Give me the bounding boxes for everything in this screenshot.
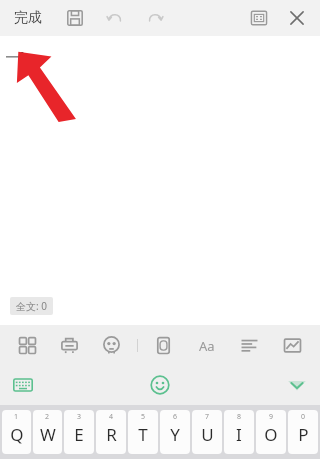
button[interactable]: Redo xyxy=(140,3,170,33)
staticText: 1 xyxy=(14,412,19,422)
button[interactable]: 完成 xyxy=(10,5,46,31)
button[interactable]: Hide keyboard xyxy=(280,368,314,402)
staticText: O xyxy=(264,423,278,446)
staticText: W xyxy=(40,423,56,446)
button[interactable]: Calendar xyxy=(244,3,274,33)
button[interactable]: Undo xyxy=(100,3,130,33)
staticText: Q xyxy=(10,423,24,446)
button[interactable]: Keyboard xyxy=(6,368,40,402)
button[interactable]: 2 xyxy=(33,410,62,454)
staticText: 9 xyxy=(269,412,274,422)
button[interactable]: 5 xyxy=(128,410,158,454)
button[interactable]: Image xyxy=(271,325,314,365)
staticText: 6 xyxy=(173,412,178,422)
button[interactable]: 4 xyxy=(96,410,126,454)
staticText: 完成 xyxy=(14,9,42,27)
button[interactable]: 6 xyxy=(160,410,190,454)
staticText: 8 xyxy=(237,412,242,422)
button[interactable]: Stamp xyxy=(48,325,90,365)
staticText: 7 xyxy=(205,412,210,422)
staticText: U xyxy=(201,423,214,446)
staticText: Aa xyxy=(199,337,215,355)
button[interactable]: 全文: 0 xyxy=(10,297,53,315)
staticText: 0 xyxy=(301,412,306,422)
staticText: I xyxy=(236,423,242,446)
staticText: 3 xyxy=(77,412,82,422)
button[interactable]: 7 xyxy=(192,410,222,454)
staticText: R xyxy=(106,423,117,446)
button[interactable]: 3 xyxy=(64,410,94,454)
staticText: E xyxy=(74,423,84,446)
button[interactable]: Save xyxy=(60,3,90,33)
button[interactable]: Font xyxy=(185,325,228,365)
staticText: 4 xyxy=(109,412,114,422)
button[interactable]: Close xyxy=(282,3,312,33)
button[interactable]: 0 xyxy=(288,410,318,454)
staticText: 全文: 0 xyxy=(16,299,47,313)
button[interactable]: 8 xyxy=(224,410,254,454)
button[interactable]: 9 xyxy=(256,410,286,454)
staticText: T xyxy=(138,423,148,446)
button[interactable]: Note xyxy=(142,325,185,365)
staticText: Y xyxy=(170,423,180,446)
button[interactable]: Emoji xyxy=(143,368,177,402)
staticText: P xyxy=(298,423,309,446)
button[interactable]: Align xyxy=(228,325,271,365)
staticText: 5 xyxy=(141,412,146,422)
staticText: 2 xyxy=(45,412,50,422)
button[interactable]: Sticker xyxy=(90,325,132,365)
button[interactable]: Grid xyxy=(6,325,48,365)
button[interactable]: 1 xyxy=(2,410,31,454)
